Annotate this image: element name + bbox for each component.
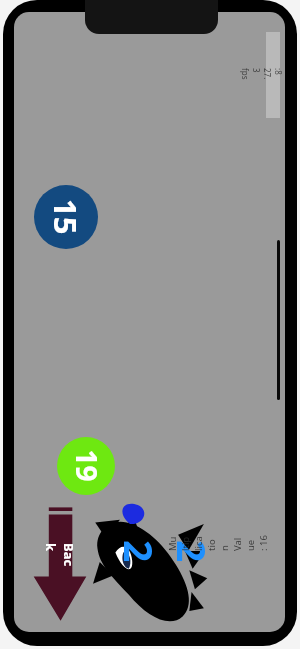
button[interactable]: Ball 19 bbox=[57, 437, 115, 495]
button[interactable]: Ball 15 bbox=[34, 185, 98, 249]
staticText: 19 bbox=[67, 449, 105, 482]
button[interactable]: Back bbox=[32, 502, 88, 622]
staticText: nodes:8 27.3 fps bbox=[240, 68, 285, 82]
staticText: 15 bbox=[45, 199, 87, 235]
staticText: Multiplication Value : 16 bbox=[166, 535, 270, 551]
staticText: 225 bbox=[103, 540, 219, 584]
staticText: Back bbox=[42, 543, 78, 571]
